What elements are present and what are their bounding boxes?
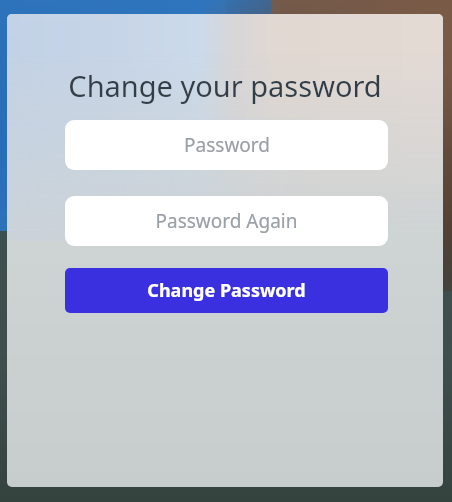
staticText: Password Again xyxy=(155,208,298,234)
staticText: Password xyxy=(184,132,270,158)
button[interactable]: Change Password xyxy=(65,268,388,313)
button[interactable]: Password xyxy=(65,120,388,170)
staticText: Change your password xyxy=(68,66,382,105)
staticText: Change Password xyxy=(147,278,306,303)
button[interactable]: Password Again xyxy=(65,196,388,246)
